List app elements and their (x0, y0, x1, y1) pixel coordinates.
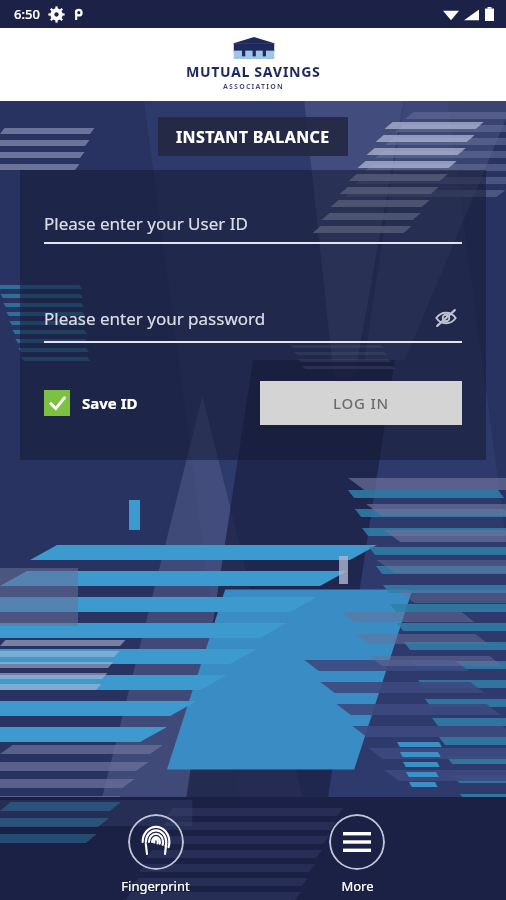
button[interactable]: Fingerprint (103, 810, 208, 899)
staticText: 6:50 (14, 5, 40, 23)
staticText: Please enter your password (44, 307, 430, 330)
button[interactable]: More (311, 810, 403, 899)
staticText: Fingerprint (121, 877, 190, 895)
staticText: INSTANT BALANCE (176, 126, 330, 148)
button[interactable]: Show password (430, 302, 462, 334)
button[interactable]: Please enter your password (44, 302, 462, 334)
button[interactable]: INSTANT BALANCE (158, 117, 348, 156)
staticText: ASSOCIATION (223, 82, 284, 92)
button[interactable]: Please enter your User ID (44, 212, 462, 235)
staticText: Save ID (82, 393, 138, 413)
staticText: MUTUAL SAVINGS (186, 62, 321, 81)
button[interactable]: Save ID (44, 390, 138, 416)
staticText: Please enter your User ID (44, 212, 462, 235)
staticText: LOG IN (333, 393, 390, 413)
staticText: More (341, 877, 374, 895)
button[interactable]: LOG IN (260, 381, 462, 425)
